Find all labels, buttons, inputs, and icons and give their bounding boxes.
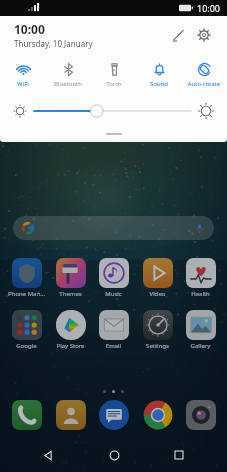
- staticText: Play Store: [50, 342, 91, 350]
- button[interactable]: Email: [93, 310, 134, 350]
- button[interactable]: Music: [93, 258, 134, 298]
- button[interactable]: Camera: [180, 400, 221, 430]
- button[interactable]: Google search: [13, 216, 214, 240]
- staticText: Phone Man…: [6, 290, 47, 298]
- staticText: Themes: [50, 290, 91, 298]
- button[interactable]: Torch: [92, 62, 136, 88]
- staticText: Thursday, 10 January: [14, 38, 93, 49]
- button[interactable]: Auto-rotate: [182, 62, 226, 88]
- staticText: Email: [93, 342, 134, 350]
- button[interactable]: Chrome: [137, 400, 178, 430]
- button[interactable]: Messages: [93, 400, 134, 430]
- staticText: Health: [180, 290, 221, 298]
- button[interactable]: Play Store: [50, 310, 91, 350]
- button[interactable]: Settings: [191, 22, 217, 48]
- staticText: 10:00: [14, 21, 45, 37]
- button[interactable]: Phone Man…: [6, 258, 47, 298]
- button[interactable]: Phone: [6, 400, 47, 430]
- staticText: Gallery: [180, 342, 221, 350]
- button[interactable]: Gallery: [180, 310, 221, 350]
- staticText: Music: [93, 290, 134, 298]
- staticText: WiFi: [1, 80, 45, 88]
- staticText: Video: [137, 290, 178, 298]
- button[interactable]: Edit quick settings: [165, 22, 191, 48]
- button[interactable]: Recents: [162, 438, 196, 472]
- button[interactable]: Video: [137, 258, 178, 298]
- button[interactable]: Settings: [137, 310, 178, 350]
- staticText: Auto-rotate: [182, 80, 226, 88]
- button[interactable]: Contacts: [50, 400, 91, 430]
- staticText: Sound: [137, 80, 181, 88]
- button[interactable]: Health: [180, 258, 221, 298]
- button[interactable]: Home: [97, 438, 131, 472]
- staticText: Bluetooth: [46, 80, 90, 88]
- staticText: Torch: [92, 80, 136, 88]
- button[interactable]: Brightness: [34, 99, 191, 123]
- button[interactable]: Google: [6, 310, 47, 350]
- staticText: 10:00: [197, 2, 221, 14]
- staticText: Settings: [137, 342, 178, 350]
- button[interactable]: Back: [31, 438, 65, 472]
- button[interactable]: WiFi: [1, 62, 45, 88]
- button[interactable]: Themes: [50, 258, 91, 298]
- button[interactable]: Sound: [137, 62, 181, 88]
- staticText: Google: [6, 342, 47, 350]
- button[interactable]: Bluetooth: [46, 62, 90, 88]
